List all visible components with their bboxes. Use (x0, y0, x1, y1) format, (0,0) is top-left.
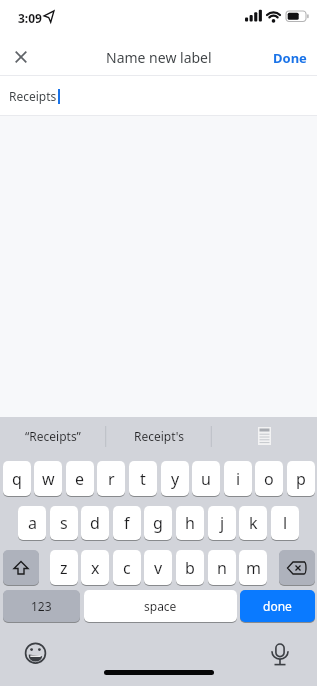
button[interactable]: t (129, 461, 157, 496)
button[interactable]: v (144, 550, 172, 585)
staticText: s (60, 512, 68, 534)
button[interactable]: y (161, 461, 189, 496)
button[interactable] (9, 45, 33, 69)
staticText: done (263, 598, 292, 614)
staticText: f (124, 512, 130, 534)
staticText: w (42, 468, 55, 490)
button[interactable]: l (271, 506, 299, 540)
staticText: 3:09 (18, 10, 42, 26)
button[interactable]: p (287, 461, 315, 496)
staticText: p (296, 468, 306, 490)
button[interactable]: h (176, 506, 204, 540)
staticText: l (283, 512, 288, 534)
button[interactable]: r (97, 461, 125, 496)
staticText: g (153, 512, 163, 534)
staticText: k (249, 512, 258, 534)
staticText: space (144, 598, 177, 614)
staticText: y (171, 468, 180, 490)
button[interactable]: q (3, 461, 31, 496)
button[interactable]: a (18, 506, 46, 540)
button[interactable]: z (50, 550, 78, 585)
button[interactable]: s (50, 506, 78, 540)
button[interactable]: “Receipts” (0, 417, 105, 455)
button[interactable]: d (81, 506, 109, 540)
button[interactable]: j (208, 506, 236, 540)
staticText: Done (273, 49, 307, 67)
staticText: u (201, 468, 211, 490)
staticText: 123 (31, 598, 52, 614)
button[interactable]: u (192, 461, 220, 496)
button[interactable]: Done (273, 49, 307, 67)
staticText: v (154, 557, 163, 579)
button[interactable]: o (255, 461, 283, 496)
staticText: r (108, 468, 115, 490)
staticText: z (60, 557, 68, 579)
staticText: n (217, 557, 227, 579)
button[interactable]: Receipts (0, 76, 317, 115)
button[interactable] (212, 417, 317, 455)
staticText: i (236, 468, 241, 490)
staticText: Receipt's (134, 428, 184, 444)
button[interactable]: x (81, 550, 109, 585)
button[interactable]: c (113, 550, 141, 585)
button[interactable]: k (239, 506, 267, 540)
staticText: a (28, 512, 37, 534)
button[interactable]: n (208, 550, 236, 585)
staticText: b (185, 557, 195, 579)
button[interactable]: b (176, 550, 204, 585)
button[interactable]: m (239, 550, 267, 585)
button[interactable]: space (84, 590, 237, 622)
button[interactable]: e (66, 461, 94, 496)
staticText: h (185, 512, 195, 534)
staticText: c (123, 557, 131, 579)
staticText: “Receipts” (25, 428, 81, 444)
staticText: m (246, 557, 261, 579)
button[interactable]: 123 (3, 590, 80, 622)
button[interactable] (279, 550, 315, 585)
button[interactable] (3, 550, 39, 585)
staticText: e (75, 468, 85, 490)
button[interactable]: i (224, 461, 252, 496)
staticText: Name new label (106, 48, 212, 67)
staticText: o (264, 468, 274, 490)
staticText: q (12, 468, 22, 490)
staticText: j (220, 512, 225, 534)
staticText: d (90, 512, 100, 534)
button[interactable]: f (113, 506, 141, 540)
staticText: t (140, 468, 146, 490)
staticText: x (91, 557, 100, 579)
staticText: Receipts (9, 88, 57, 104)
button[interactable]: Receipt's (106, 417, 211, 455)
button[interactable]: done (240, 590, 315, 622)
button[interactable]: g (144, 506, 172, 540)
button[interactable]: w (34, 461, 62, 496)
